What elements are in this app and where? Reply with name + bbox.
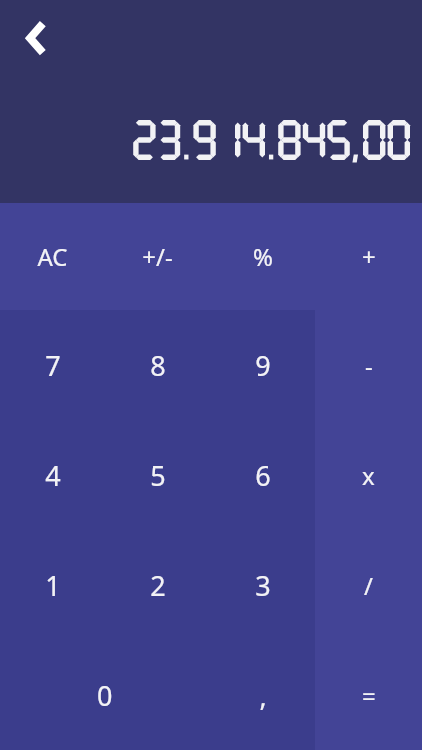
staticText: 7 — [45, 347, 61, 384]
staticText: = — [362, 679, 376, 712]
button[interactable]: 2 — [105, 530, 210, 640]
staticText: 4 — [45, 457, 61, 494]
staticText: 1 — [45, 567, 61, 604]
staticText: / — [364, 569, 373, 602]
staticText: , — [259, 677, 267, 714]
staticText: 2 — [150, 567, 166, 604]
button[interactable]: +/- — [105, 203, 210, 310]
button[interactable]: 7 — [0, 310, 105, 420]
button[interactable]: 8 — [105, 310, 210, 420]
button[interactable]: 9 — [210, 310, 315, 420]
staticText: 9 — [255, 347, 271, 384]
staticText: 3 — [255, 567, 271, 604]
staticText: + — [362, 240, 376, 273]
button[interactable]: 5 — [105, 420, 210, 530]
button[interactable]: % — [210, 203, 315, 310]
button[interactable]: 4 — [0, 420, 105, 530]
button[interactable]: + — [315, 203, 422, 310]
staticText: 0 — [97, 677, 113, 714]
staticText: +/- — [142, 240, 173, 273]
button[interactable]: / — [315, 530, 422, 640]
staticText: 8 — [150, 347, 166, 384]
staticText: % — [253, 240, 273, 273]
staticText: x — [362, 459, 375, 492]
button[interactable]: 0 — [0, 640, 210, 750]
staticText: 6 — [255, 457, 271, 494]
button[interactable]: , — [210, 640, 315, 750]
staticText: 5 — [150, 457, 166, 494]
button[interactable]: AC — [0, 203, 105, 310]
button[interactable]: 6 — [210, 420, 315, 530]
button[interactable]: = — [315, 640, 422, 750]
button[interactable]: 3 — [210, 530, 315, 640]
staticText: - — [365, 349, 373, 382]
button[interactable]: - — [315, 310, 422, 420]
button[interactable]: Back — [8, 8, 66, 66]
button[interactable]: x — [315, 420, 422, 530]
staticText: AC — [37, 240, 68, 273]
button[interactable]: 1 — [0, 530, 105, 640]
